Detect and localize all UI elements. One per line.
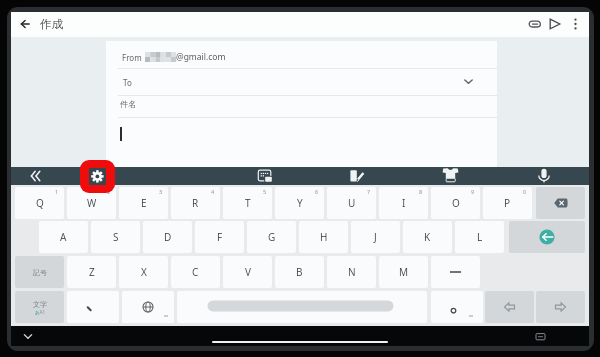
button[interactable]: Q [15,187,64,219]
button[interactable] [122,291,174,323]
button[interactable]: J [351,221,400,253]
button[interactable]: L [455,221,504,253]
staticText: H [320,230,328,244]
button[interactable] [534,332,547,342]
staticText: K [424,230,431,244]
staticText: To [123,77,132,88]
staticText: N [348,265,356,279]
staticText: J [374,230,377,244]
staticText: A [60,230,67,244]
staticText: 4 [211,188,215,195]
button[interactable]: K [403,221,452,253]
staticText: S [113,230,119,244]
staticText: D [164,230,172,244]
button[interactable]: M [379,256,428,288]
button[interactable]: E [119,187,168,219]
button[interactable]: A [39,221,88,253]
staticText: X [141,265,147,279]
staticText: Q [36,196,44,210]
button[interactable]: I [379,187,428,219]
button[interactable]: N [327,256,376,288]
staticText: W [87,196,97,210]
button[interactable] [462,75,475,88]
button[interactable] [570,17,581,31]
staticText: O [452,196,460,210]
button[interactable]: R [171,187,220,219]
staticText: あA1 [35,309,46,315]
staticText: 記号 [33,268,47,277]
button[interactable]: W [67,187,116,219]
button[interactable] [89,168,106,185]
staticText: T [245,196,251,210]
staticText: 文字 [33,300,47,309]
button[interactable]: O [431,187,480,219]
staticText: Y [297,196,303,210]
button[interactable] [548,17,562,31]
staticText: P [504,196,511,210]
staticText: 3 [159,188,163,195]
button[interactable] [536,291,585,323]
button[interactable]: V [223,256,272,288]
staticText: R [192,196,199,210]
staticText: 2 [107,188,111,195]
staticText: E [141,196,147,210]
button[interactable] [145,51,175,63]
staticText: F [217,230,223,244]
button[interactable]: H [299,221,348,253]
button[interactable] [528,17,542,31]
staticText: 8 [419,188,423,195]
staticText: 件名 [120,99,136,109]
button[interactable]: B [275,256,324,288]
staticText: 6 [315,188,319,195]
staticText: 9 [471,188,475,195]
staticText: M [399,265,409,279]
button[interactable]: Y [275,187,324,219]
staticText: @gmail.com [176,51,226,63]
button[interactable]: P [483,187,532,219]
button[interactable] [347,167,367,185]
staticText: 1 [55,188,59,195]
button[interactable] [431,256,480,288]
button[interactable]: T [223,187,272,219]
staticText: Z [89,265,95,279]
button[interactable] [441,166,460,185]
button[interactable]: C [171,256,220,288]
staticText: 7 [367,188,371,195]
button[interactable]: F [195,221,244,253]
staticText: B [296,265,303,279]
button[interactable] [80,160,115,193]
button[interactable] [509,221,585,253]
button[interactable] [536,166,552,185]
button[interactable] [106,69,497,96]
button[interactable]: 記号 [15,256,64,288]
staticText: From [122,52,142,63]
button[interactable]: D [143,221,192,253]
button[interactable] [255,167,275,185]
staticText: U [348,196,356,210]
button[interactable] [29,168,48,184]
staticText: C [192,265,199,279]
staticText: 作成 [40,17,63,31]
staticText: I [402,196,406,210]
button[interactable]: 文字 [15,291,64,323]
button[interactable] [67,291,119,323]
button[interactable] [485,291,534,323]
button[interactable]: Z [67,256,116,288]
staticText: 0 [523,188,527,195]
staticText: 5 [263,188,267,195]
button[interactable]: U [327,187,376,219]
button[interactable] [177,291,427,323]
button[interactable] [536,187,585,219]
button[interactable]: X [119,256,168,288]
staticText: G [268,230,276,244]
button[interactable] [18,17,33,31]
staticText: L [477,230,483,244]
button[interactable] [22,331,34,342]
button[interactable]: G [247,221,296,253]
button[interactable]: S [91,221,140,253]
button[interactable] [431,291,483,323]
staticText: V [245,265,251,279]
